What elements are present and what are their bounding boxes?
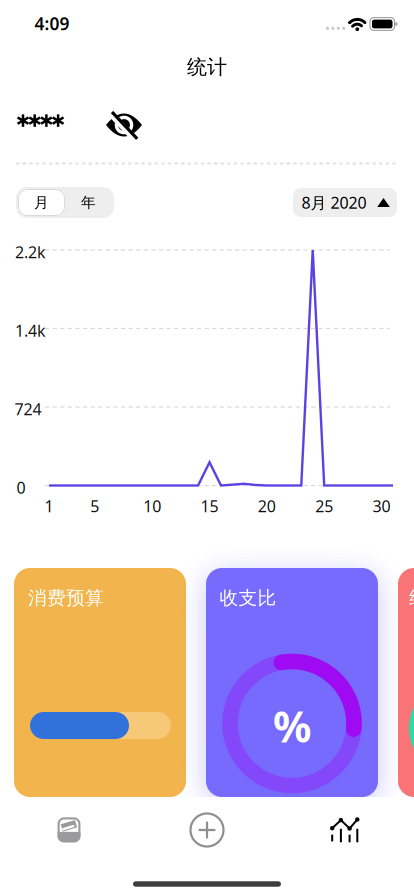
button[interactable]: 月 — [18, 189, 65, 216]
button[interactable]: 统计 — [323, 810, 367, 850]
staticText: 结余 — [409, 586, 414, 609]
staticText: 2.2k — [15, 241, 46, 263]
staticText: 25 — [315, 495, 333, 517]
staticText: % — [273, 698, 311, 754]
staticText: 10 — [143, 495, 161, 517]
staticText: 月 — [34, 193, 49, 211]
staticText: 年 — [81, 193, 96, 211]
staticText: 消费预算 — [28, 586, 104, 609]
staticText: 30 — [372, 495, 390, 517]
staticText: 20 — [258, 495, 276, 517]
button[interactable]: 记一笔 — [185, 810, 229, 850]
button[interactable]: 年 — [65, 189, 112, 216]
staticText: 4:09 — [34, 12, 69, 35]
staticText: 统计 — [187, 55, 227, 79]
staticText: 收支比 — [219, 586, 276, 609]
staticText: 0 — [16, 477, 25, 498]
staticText: 5 — [90, 495, 99, 517]
button[interactable]: 显示金额 — [102, 107, 146, 143]
button[interactable]: 账单 — [47, 810, 91, 850]
staticText: 15 — [200, 495, 218, 517]
staticText: 8月 2020 — [301, 192, 366, 213]
staticText: 1.4k — [15, 320, 46, 341]
staticText: 1 — [44, 495, 53, 517]
button[interactable]: 结余 — [398, 568, 414, 797]
button[interactable]: 收支比 — [206, 568, 378, 797]
button[interactable]: 消费预算 — [14, 568, 186, 797]
staticText: 724 — [14, 398, 41, 420]
button[interactable]: 8月 2020 — [293, 188, 397, 217]
